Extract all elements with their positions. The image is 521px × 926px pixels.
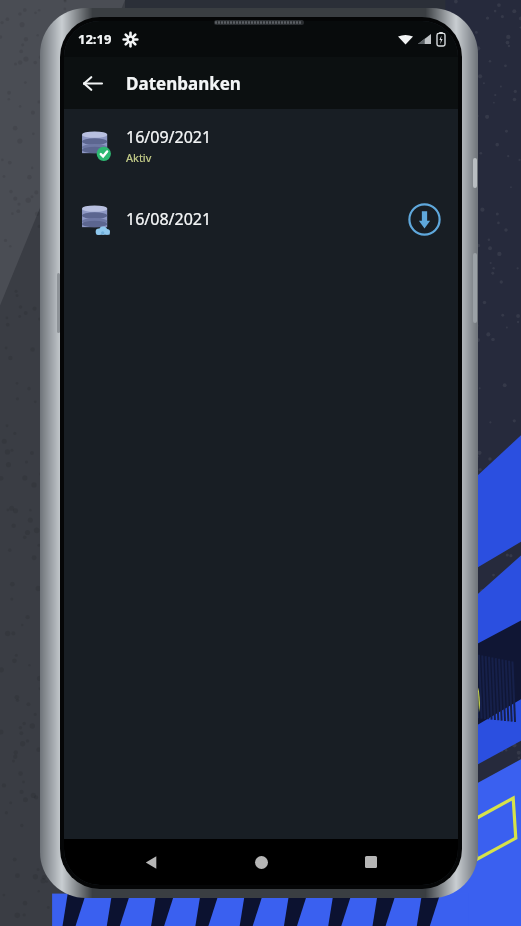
staticText: Aktiv — [126, 150, 152, 165]
staticText: Datenbanken — [126, 72, 241, 95]
button[interactable]: Übersicht — [348, 839, 394, 885]
button[interactable]: Startbildschirm — [238, 839, 284, 885]
button[interactable]: Zurück — [128, 839, 174, 885]
button[interactable]: Herunterladen — [404, 199, 444, 239]
staticText: 12:19 — [78, 30, 112, 48]
button[interactable]: Zurück — [70, 61, 114, 105]
staticText: 16/09/2021 — [126, 126, 212, 148]
button[interactable]: 16/08/2021 — [64, 197, 458, 241]
staticText: 16/08/2021 — [126, 208, 212, 230]
button[interactable]: 16/09/2021 — [64, 121, 458, 169]
